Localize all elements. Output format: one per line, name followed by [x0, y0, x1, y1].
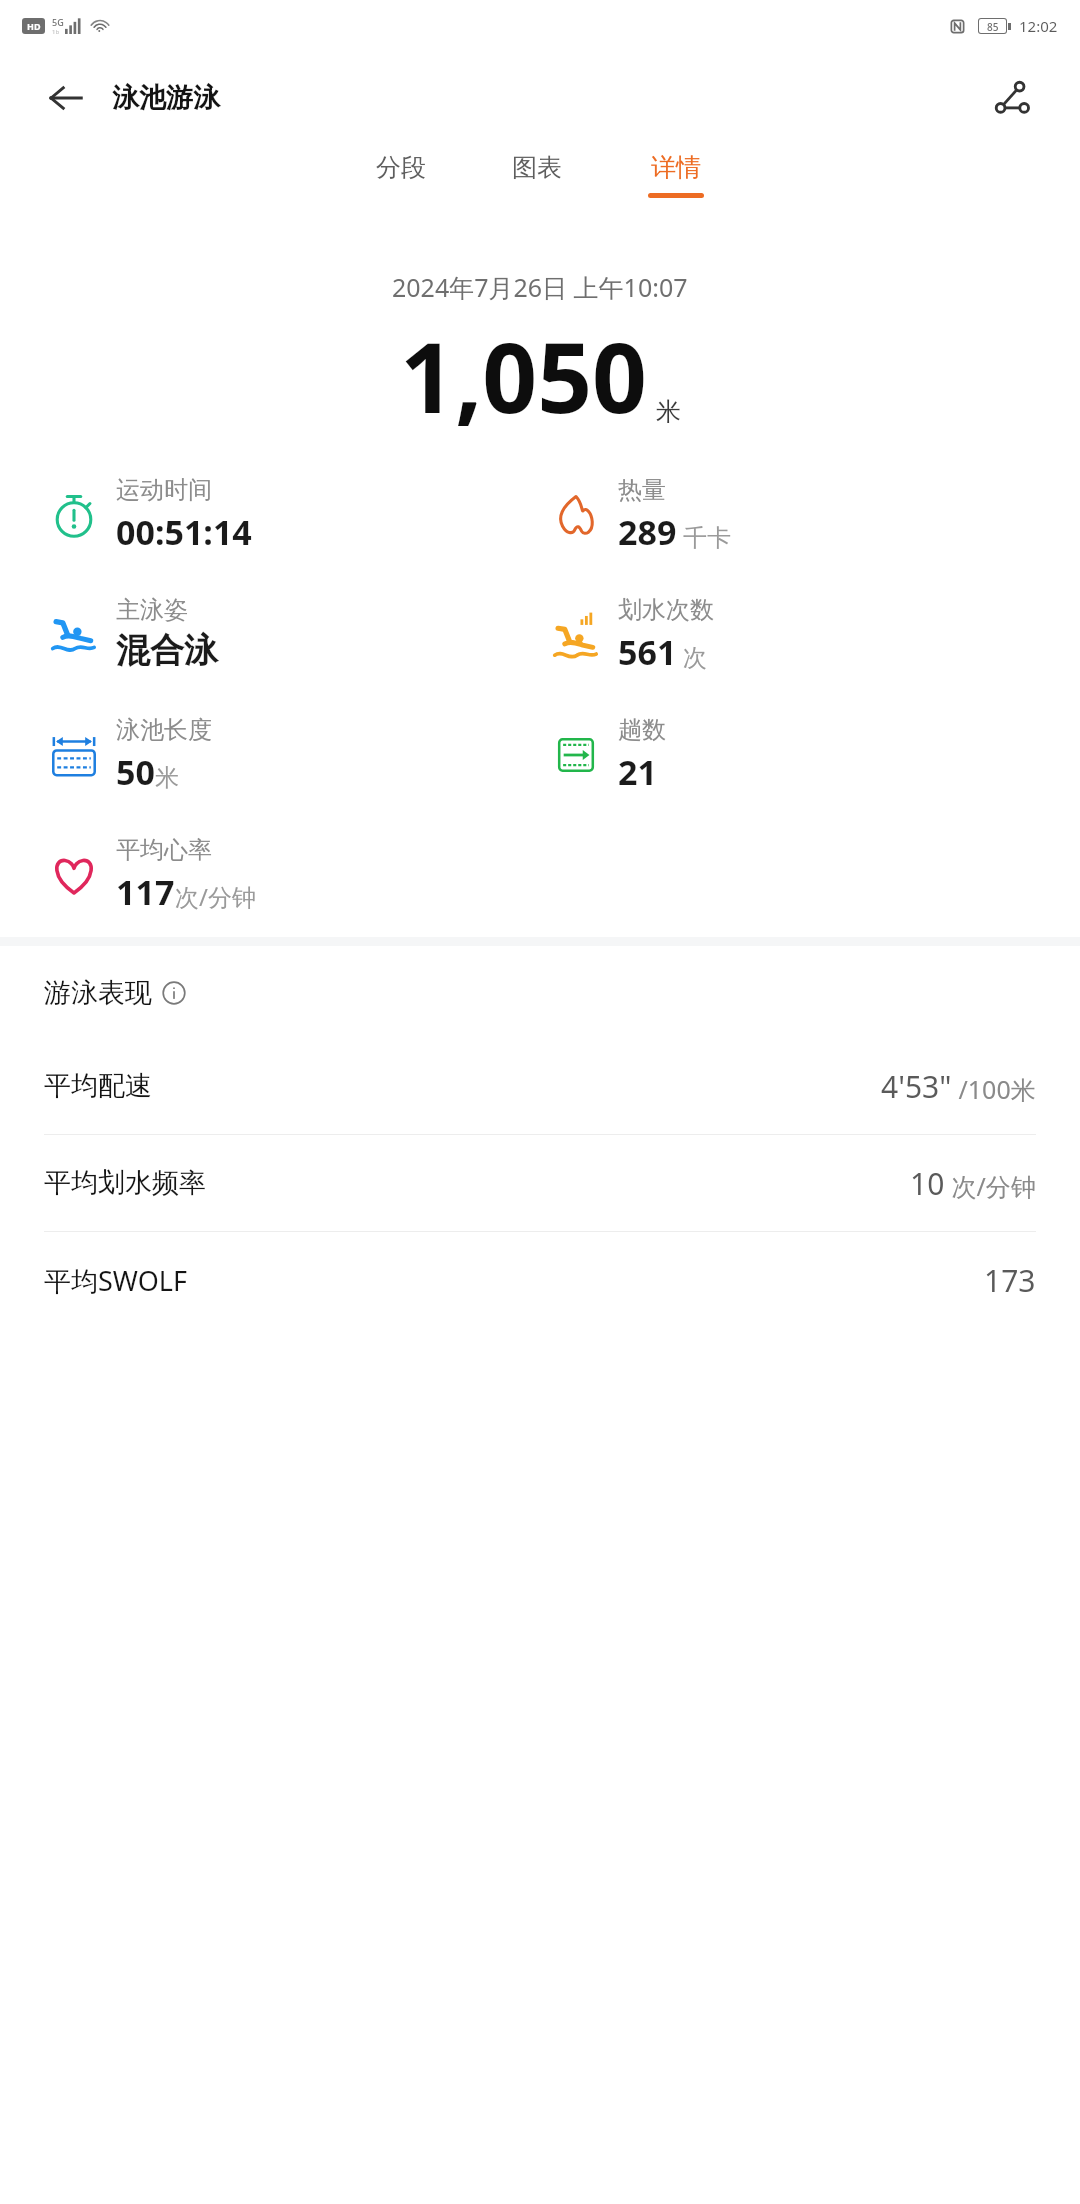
staticText: 划水次数 [618, 595, 714, 625]
staticText: 泳池长度 [116, 715, 212, 745]
button[interactable]: 平均划水频率 [0, 1135, 1080, 1231]
staticText: 50 [116, 749, 155, 795]
staticText: 米 [656, 396, 681, 427]
staticText: 289 [618, 509, 677, 555]
button[interactable]: 分段 [370, 144, 432, 206]
staticText: HD [27, 20, 41, 32]
staticText: 1,050 [400, 310, 648, 441]
staticText: 热量 [618, 475, 666, 505]
staticText: 117 [116, 869, 175, 915]
other: 说明 [162, 981, 186, 1005]
staticText: 运动时间 [116, 475, 212, 505]
staticText: 4'53" [881, 1066, 952, 1107]
staticText: 千卡 [683, 523, 731, 553]
staticText: 2024年7月26日 上午10:07 [392, 270, 688, 304]
staticText: 平均心率 [116, 835, 212, 865]
staticText: 00:51:14 [116, 509, 252, 555]
staticText: 21 [618, 749, 657, 795]
staticText: 泳池游泳 [112, 81, 220, 115]
staticText: 平均SWOLF [44, 1262, 187, 1299]
staticText: 561 [618, 629, 677, 675]
staticText: 次/分钟 [175, 880, 256, 913]
staticText: 米 [155, 763, 179, 793]
button[interactable]: 分享 [984, 70, 1040, 126]
staticText: 173 [984, 1260, 1036, 1301]
button[interactable]: 平均SWOLF [0, 1232, 1080, 1328]
staticText: 10 [910, 1163, 945, 1204]
button[interactable]: 详情 [642, 144, 710, 206]
staticText: 混合泳 [116, 629, 218, 672]
staticText: 次/分钟 [945, 1169, 1036, 1203]
staticText: 85 [987, 20, 999, 32]
staticText: 5G [52, 16, 64, 28]
button[interactable]: 游泳表现 [44, 976, 1080, 1010]
button[interactable]: 平均配速 [0, 1038, 1080, 1134]
button[interactable]: 图表 [506, 144, 568, 206]
staticText: 主泳姿 [116, 595, 188, 625]
button[interactable]: 返回 [40, 72, 92, 124]
staticText: 分段 [376, 152, 426, 183]
staticText: 游泳表现 [44, 976, 152, 1010]
staticText: /100米 [952, 1072, 1036, 1106]
staticText: 平均划水频率 [44, 1166, 206, 1200]
staticText: 次 [683, 643, 707, 673]
staticText: 图表 [512, 152, 562, 183]
staticText: 趟数 [618, 715, 666, 745]
staticText: 1b [52, 28, 60, 36]
staticText: 12:02 [1019, 16, 1058, 36]
staticText: 平均配速 [44, 1069, 152, 1103]
staticText: 详情 [651, 152, 701, 183]
